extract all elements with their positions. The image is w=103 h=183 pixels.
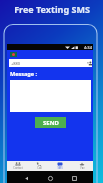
staticText: SEND [43,119,59,127]
button[interactable]: Recents [69,173,79,183]
staticText: Fav [80,166,85,170]
staticText: Message : [10,70,38,77]
staticText: SMS [57,166,63,170]
button[interactable]: Home [45,173,55,183]
staticText: Call [37,166,42,170]
button[interactable]: SMS [49,161,71,171]
staticText: 4:34 [84,45,92,50]
button[interactable]: Fav [71,161,93,171]
button[interactable]: Back [21,173,31,183]
button[interactable]: Call [28,161,49,171]
staticText: Contact [13,166,23,170]
button[interactable]: Contact [7,161,28,171]
button[interactable]: SEND [35,117,66,128]
staticText: +880 [11,61,21,66]
staticText: Free Texting SMS [14,3,90,15]
